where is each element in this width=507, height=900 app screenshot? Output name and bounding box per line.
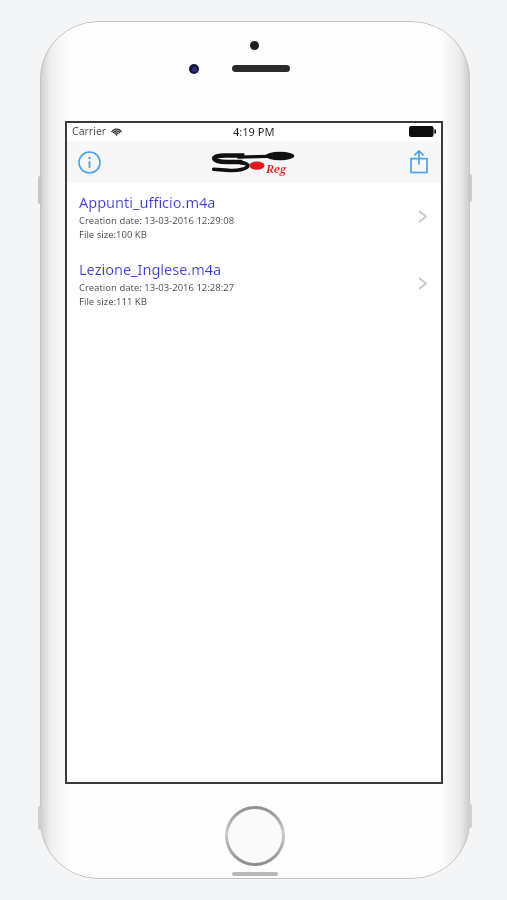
staticText: Reg <box>266 161 287 176</box>
button[interactable]: Home <box>225 806 285 866</box>
staticText: Creation date: 13-03-2016 12:28:27 <box>79 281 235 294</box>
button[interactable]: Share <box>404 147 434 177</box>
staticText: File size:111 KB <box>79 295 147 308</box>
button[interactable]: Info <box>74 147 104 177</box>
staticText: Lezione_Inglese.m4a <box>79 259 222 279</box>
staticText: 4:19 PM <box>233 124 275 139</box>
staticText: Appunti_ufficio.m4a <box>79 192 216 212</box>
staticText: Creation date: 13-03-2016 12:29:08 <box>79 214 235 227</box>
button[interactable]: Lezione_Inglese.m4a <box>65 250 443 317</box>
staticText: File size:100 KB <box>79 228 147 241</box>
button[interactable]: Appunti_ufficio.m4a <box>65 183 443 250</box>
staticText: Carrier <box>72 124 107 138</box>
